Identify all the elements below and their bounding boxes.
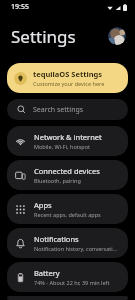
staticText: Network & internet <box>34 132 102 142</box>
button[interactable]: Apps <box>7 194 128 224</box>
staticText: Bluetooth, pairing <box>34 177 81 184</box>
staticText: Customize your device here <box>33 80 105 87</box>
staticText: Mobile, Wi-Fi, hotspot <box>34 143 91 150</box>
staticText: Battery <box>34 268 60 278</box>
staticText: Apps <box>34 200 52 210</box>
button[interactable]: Search settings <box>7 99 128 120</box>
staticText: tequilaOS Settings <box>33 69 103 79</box>
staticText: Recent apps, default apps <box>34 211 101 218</box>
staticText: 19:55 <box>11 2 29 12</box>
staticText: Search settings <box>33 105 84 115</box>
staticText: Notifications <box>34 234 79 244</box>
button[interactable]: Account <box>108 27 126 45</box>
staticText: Settings <box>11 25 76 48</box>
button[interactable]: Network & internet <box>7 126 128 156</box>
button[interactable]: Battery <box>7 262 128 292</box>
button[interactable]: Notifications <box>7 228 128 258</box>
staticText: Connected devices <box>34 166 100 176</box>
button[interactable]: tequilaOS Settings <box>7 63 128 93</box>
button[interactable]: Connected devices <box>7 160 128 190</box>
staticText: 74% - About 22 hr, 39 min left <box>34 279 110 286</box>
staticText: Notification history, conversations <box>34 245 120 252</box>
